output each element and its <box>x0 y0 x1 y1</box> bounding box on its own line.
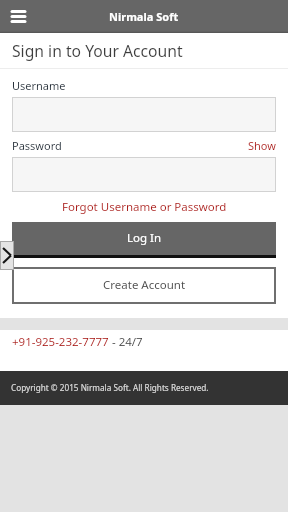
button[interactable]: Log In <box>12 222 276 256</box>
button[interactable]: Open navigation drawer <box>0 241 14 270</box>
button[interactable] <box>12 97 276 132</box>
staticText: Log In <box>127 230 162 246</box>
staticText: Nirmala Soft <box>109 9 179 24</box>
staticText: Create Account <box>103 277 186 293</box>
button[interactable]: Open navigation menu <box>2 0 34 33</box>
button[interactable]: Create Account <box>12 267 276 304</box>
staticText: Copyright © 2015 Nirmala Soft. All Right… <box>11 382 209 393</box>
button[interactable] <box>12 157 276 192</box>
staticText: Show <box>248 138 276 153</box>
staticText: Sign in to Your Account <box>12 40 183 61</box>
staticText: Username <box>12 78 66 93</box>
button[interactable]: Show <box>235 137 276 153</box>
staticText: Forgot Username or Password <box>62 199 227 215</box>
staticText: - 24/7 <box>109 334 143 350</box>
button[interactable]: +91-925-232-7777 <box>12 334 143 350</box>
staticText: Password <box>12 138 62 153</box>
staticText: +91-925-232-7777 <box>12 334 109 350</box>
button[interactable]: Forgot Username or Password <box>0 198 288 216</box>
